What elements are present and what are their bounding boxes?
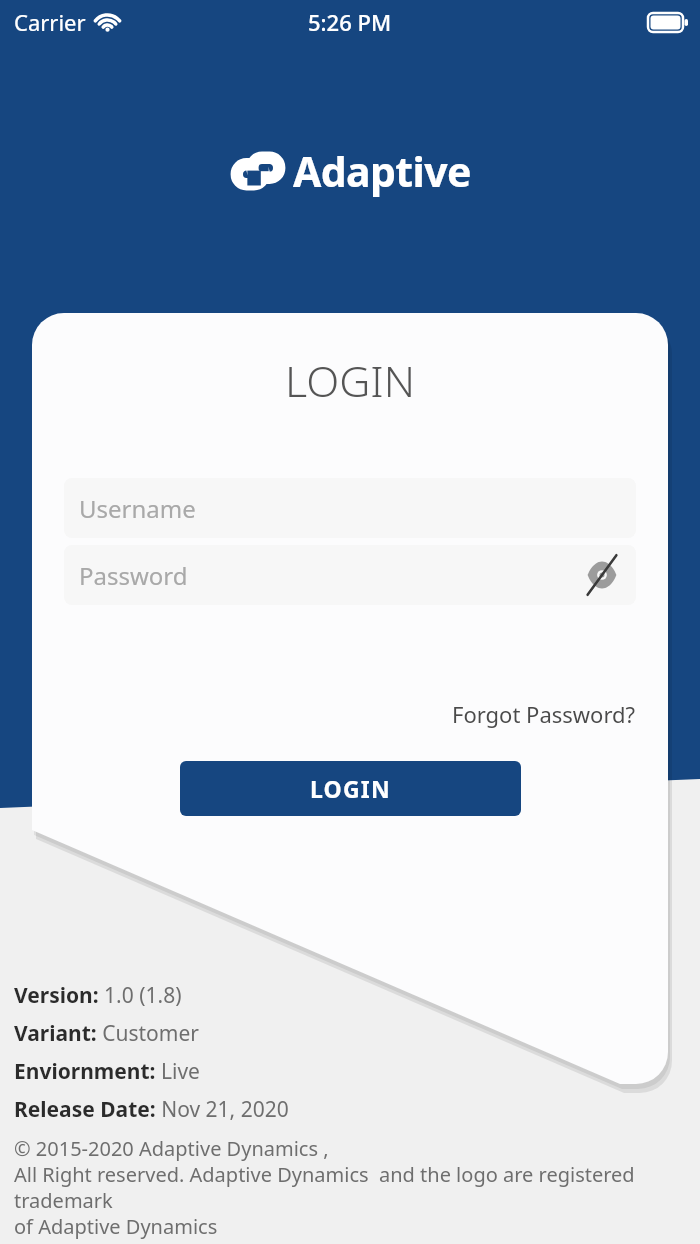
- staticText: LOGIN: [310, 773, 391, 804]
- button[interactable]: Forgot Password?: [446, 693, 642, 735]
- staticText: Username: [79, 492, 196, 525]
- staticText: © 2015-2020 Adaptive Dynamics , All Righ…: [14, 1135, 700, 1240]
- button[interactable]: Username: [64, 478, 636, 538]
- staticText: Password: [79, 559, 188, 592]
- staticText: Enviornment: Live: [14, 1057, 200, 1086]
- staticText: Release Date: Nov 21, 2020: [14, 1095, 289, 1124]
- button[interactable]: Password: [64, 545, 636, 605]
- button[interactable]: Show password: [584, 557, 620, 593]
- button[interactable]: LOGIN: [180, 761, 521, 816]
- staticText: Variant: Customer: [14, 1019, 199, 1048]
- staticText: Version: 1.0 (1.8): [14, 981, 182, 1010]
- staticText: Carrier: [14, 7, 86, 37]
- staticText: Adaptive: [293, 143, 471, 199]
- staticText: LOGIN: [0, 351, 700, 410]
- staticText: 5:26 PM: [308, 7, 392, 37]
